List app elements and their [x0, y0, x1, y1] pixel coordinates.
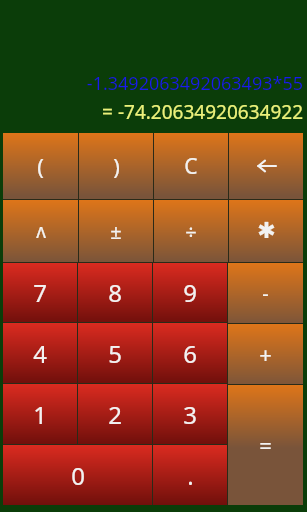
button[interactable]: 5	[78, 323, 152, 383]
button[interactable]: 1	[3, 384, 77, 444]
staticText: +	[259, 339, 272, 369]
staticText: = -74.20634920634922	[6, 99, 303, 125]
staticText: ✱	[257, 218, 276, 244]
button[interactable]: 2	[78, 384, 152, 444]
button[interactable]: ʌ	[3, 200, 78, 262]
button[interactable]: )	[79, 133, 153, 199]
staticText: 0	[71, 459, 85, 492]
staticText: C	[184, 152, 198, 181]
button[interactable]: 7	[3, 263, 77, 322]
staticText: -	[262, 280, 269, 307]
staticText: 1	[33, 398, 47, 431]
button[interactable]: Backspace	[229, 133, 303, 199]
button[interactable]: ✱	[229, 200, 303, 262]
button[interactable]: (	[3, 133, 78, 199]
button[interactable]: 9	[153, 263, 227, 322]
button[interactable]: +	[228, 324, 303, 384]
staticText: .	[187, 459, 194, 492]
button[interactable]: ±	[79, 200, 153, 262]
button[interactable]: 0	[3, 445, 152, 505]
staticText: 3	[183, 398, 197, 431]
button[interactable]: .	[153, 445, 227, 505]
staticText: 6	[183, 337, 197, 370]
staticText: 7	[33, 276, 47, 309]
staticText: )	[113, 151, 120, 181]
button[interactable]: =	[228, 385, 303, 505]
staticText: =	[259, 430, 272, 460]
staticText: ÷	[185, 218, 197, 245]
button[interactable]: 6	[153, 323, 227, 383]
button[interactable]: -	[228, 263, 303, 323]
button[interactable]: C	[154, 133, 228, 199]
button[interactable]: 3	[153, 384, 227, 444]
staticText: ±	[110, 218, 122, 245]
staticText: 9	[183, 276, 197, 309]
staticText: ʌ	[36, 218, 46, 244]
staticText: -1.3492063492063493*55	[6, 71, 303, 96]
staticText: 2	[108, 398, 122, 431]
staticText: (	[37, 151, 44, 181]
button[interactable]: ÷	[154, 200, 228, 262]
staticText: 8	[108, 276, 122, 309]
button[interactable]: 8	[78, 263, 152, 322]
staticText: 5	[108, 337, 122, 370]
staticText: 4	[33, 337, 47, 370]
button[interactable]: 4	[3, 323, 77, 383]
